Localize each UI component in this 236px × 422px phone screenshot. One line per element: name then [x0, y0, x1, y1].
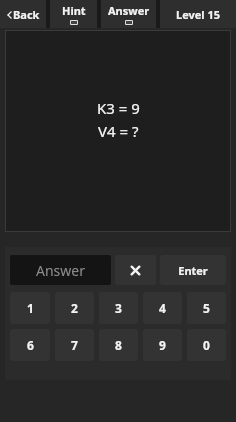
button[interactable]: Answer	[101, 0, 156, 28]
staticText: 7	[71, 337, 78, 353]
button[interactable]: 6	[10, 329, 50, 361]
staticText: 3	[115, 300, 122, 316]
staticText: 0	[203, 337, 210, 353]
button[interactable]: Level 15	[160, 0, 236, 28]
staticText: 9	[159, 337, 166, 353]
button[interactable]: Hint	[50, 0, 97, 28]
staticText: Answer	[108, 3, 150, 18]
staticText: Enter	[178, 263, 208, 278]
button[interactable]: 0	[187, 329, 226, 361]
staticText: Level 15	[176, 7, 221, 22]
button[interactable]: 1	[10, 292, 50, 324]
button[interactable]: 7	[55, 329, 94, 361]
button[interactable]: Enter	[160, 255, 226, 285]
button[interactable]: 2	[55, 292, 94, 324]
staticText: 6	[27, 337, 34, 353]
staticText: Hint	[62, 3, 86, 18]
button[interactable]: Answer	[10, 255, 111, 285]
staticText: 5	[203, 300, 210, 316]
button[interactable]: 4	[143, 292, 182, 324]
staticText: 4	[159, 300, 166, 316]
staticText: V4 = ?	[98, 121, 139, 141]
staticText: K3 = 9	[97, 98, 140, 118]
button[interactable]: 8	[99, 329, 138, 361]
button[interactable]: Back	[0, 0, 46, 28]
staticText: 8	[115, 337, 122, 353]
staticText: 1	[27, 300, 34, 316]
button[interactable]: 5	[187, 292, 226, 324]
button[interactable]: 9	[143, 329, 182, 361]
staticText: 2	[71, 300, 78, 316]
button[interactable]: 3	[99, 292, 138, 324]
button[interactable]: Clear	[115, 255, 156, 285]
staticText: Answer	[36, 261, 85, 280]
staticText: Back	[13, 7, 40, 22]
